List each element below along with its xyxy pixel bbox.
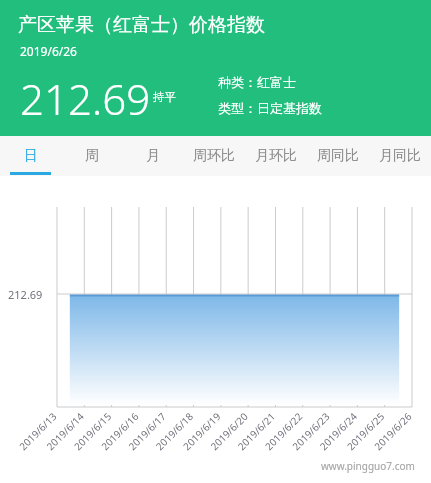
staticText: 日 bbox=[24, 147, 38, 165]
button[interactable]: 周环比 bbox=[183, 136, 245, 176]
button[interactable]: 月 bbox=[122, 136, 183, 176]
button[interactable]: 月环比 bbox=[245, 136, 307, 176]
staticText: 产区苹果（红富士）价格指数 bbox=[18, 13, 265, 37]
button[interactable]: 周同比 bbox=[307, 136, 369, 176]
button[interactable]: 日 bbox=[0, 136, 61, 176]
staticText: 月环比 bbox=[255, 147, 297, 165]
staticText: 周 bbox=[85, 147, 99, 165]
button[interactable]: 周 bbox=[61, 136, 122, 176]
staticText: 212.69 bbox=[20, 70, 151, 127]
staticText: 持平 bbox=[153, 90, 176, 104]
staticText: 种类：红富士 bbox=[218, 74, 296, 90]
button[interactable]: 月同比 bbox=[369, 136, 431, 176]
staticText: 2019/6/26 bbox=[20, 43, 77, 59]
staticText: 周同比 bbox=[317, 147, 359, 165]
staticText: 类型：日定基指数 bbox=[218, 100, 322, 116]
staticText: 月 bbox=[146, 147, 160, 165]
staticText: 周环比 bbox=[193, 147, 235, 165]
staticText: 月同比 bbox=[379, 147, 421, 165]
